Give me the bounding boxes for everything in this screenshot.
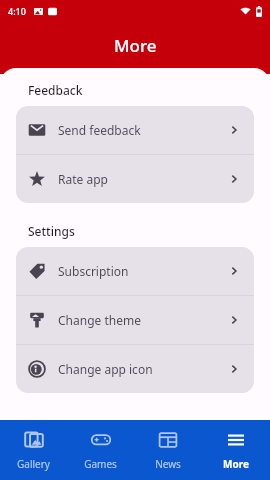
button[interactable]: Change theme	[16, 296, 254, 344]
staticText: News	[155, 457, 181, 471]
staticText: Settings	[28, 223, 75, 239]
button[interactable]: More	[202, 420, 270, 480]
staticText: Subscription	[58, 263, 129, 279]
button[interactable]: Send feedback	[16, 106, 254, 154]
staticText: Gallery	[17, 457, 50, 471]
button[interactable]: Gallery	[0, 420, 67, 480]
staticText: More	[114, 34, 157, 57]
staticText: Games	[84, 457, 117, 471]
staticText: Change theme	[58, 312, 141, 328]
staticText: More	[223, 457, 249, 471]
button[interactable]: Games	[67, 420, 134, 480]
staticText: Rate app	[58, 171, 108, 187]
button[interactable]: Rate app	[16, 155, 254, 203]
staticText: 4:10	[8, 5, 26, 17]
button[interactable]: News	[134, 420, 202, 480]
staticText: Change app icon	[58, 361, 153, 377]
button[interactable]: Subscription	[16, 247, 254, 295]
button[interactable]: Change app icon	[16, 345, 254, 393]
staticText: Feedback	[28, 82, 83, 98]
staticText: Send feedback	[58, 122, 141, 138]
